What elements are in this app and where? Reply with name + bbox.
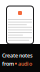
staticText: Create notes: [2, 52, 33, 59]
staticText: audio: [18, 60, 32, 67]
staticText: from: [2, 60, 14, 67]
